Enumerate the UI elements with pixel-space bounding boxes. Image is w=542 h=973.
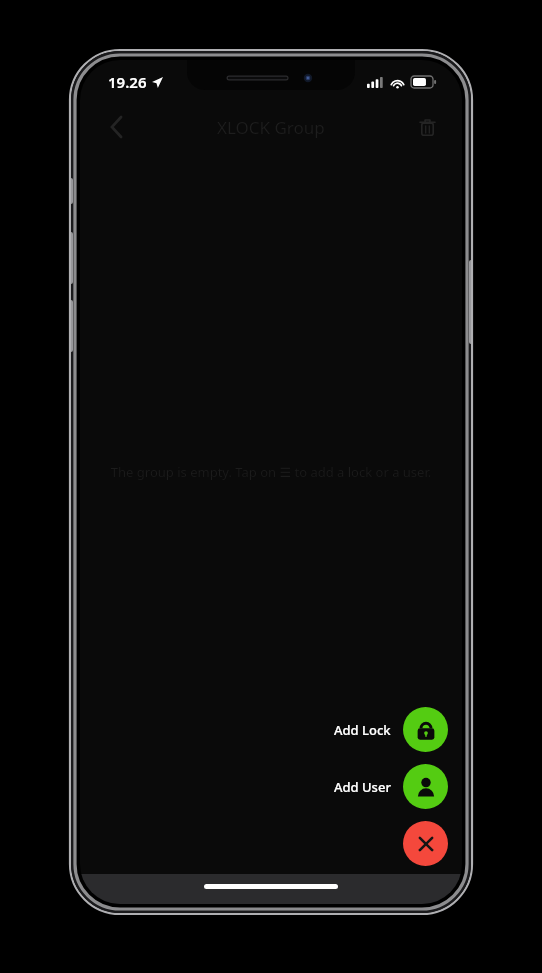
staticText: 19.26 [108, 72, 147, 92]
button[interactable]: Close [403, 819, 448, 868]
button[interactable]: Add Lock [334, 705, 448, 754]
staticText: XLOCK Group [217, 116, 325, 139]
staticText: Add Lock [334, 721, 391, 739]
staticText: Add User [334, 778, 391, 796]
button[interactable]: Add User [334, 762, 448, 811]
button[interactable]: Back [94, 105, 138, 149]
staticText: The group is empty. Tap on ☰ to add a lo… [92, 463, 450, 481]
button[interactable]: Delete group [406, 106, 448, 148]
